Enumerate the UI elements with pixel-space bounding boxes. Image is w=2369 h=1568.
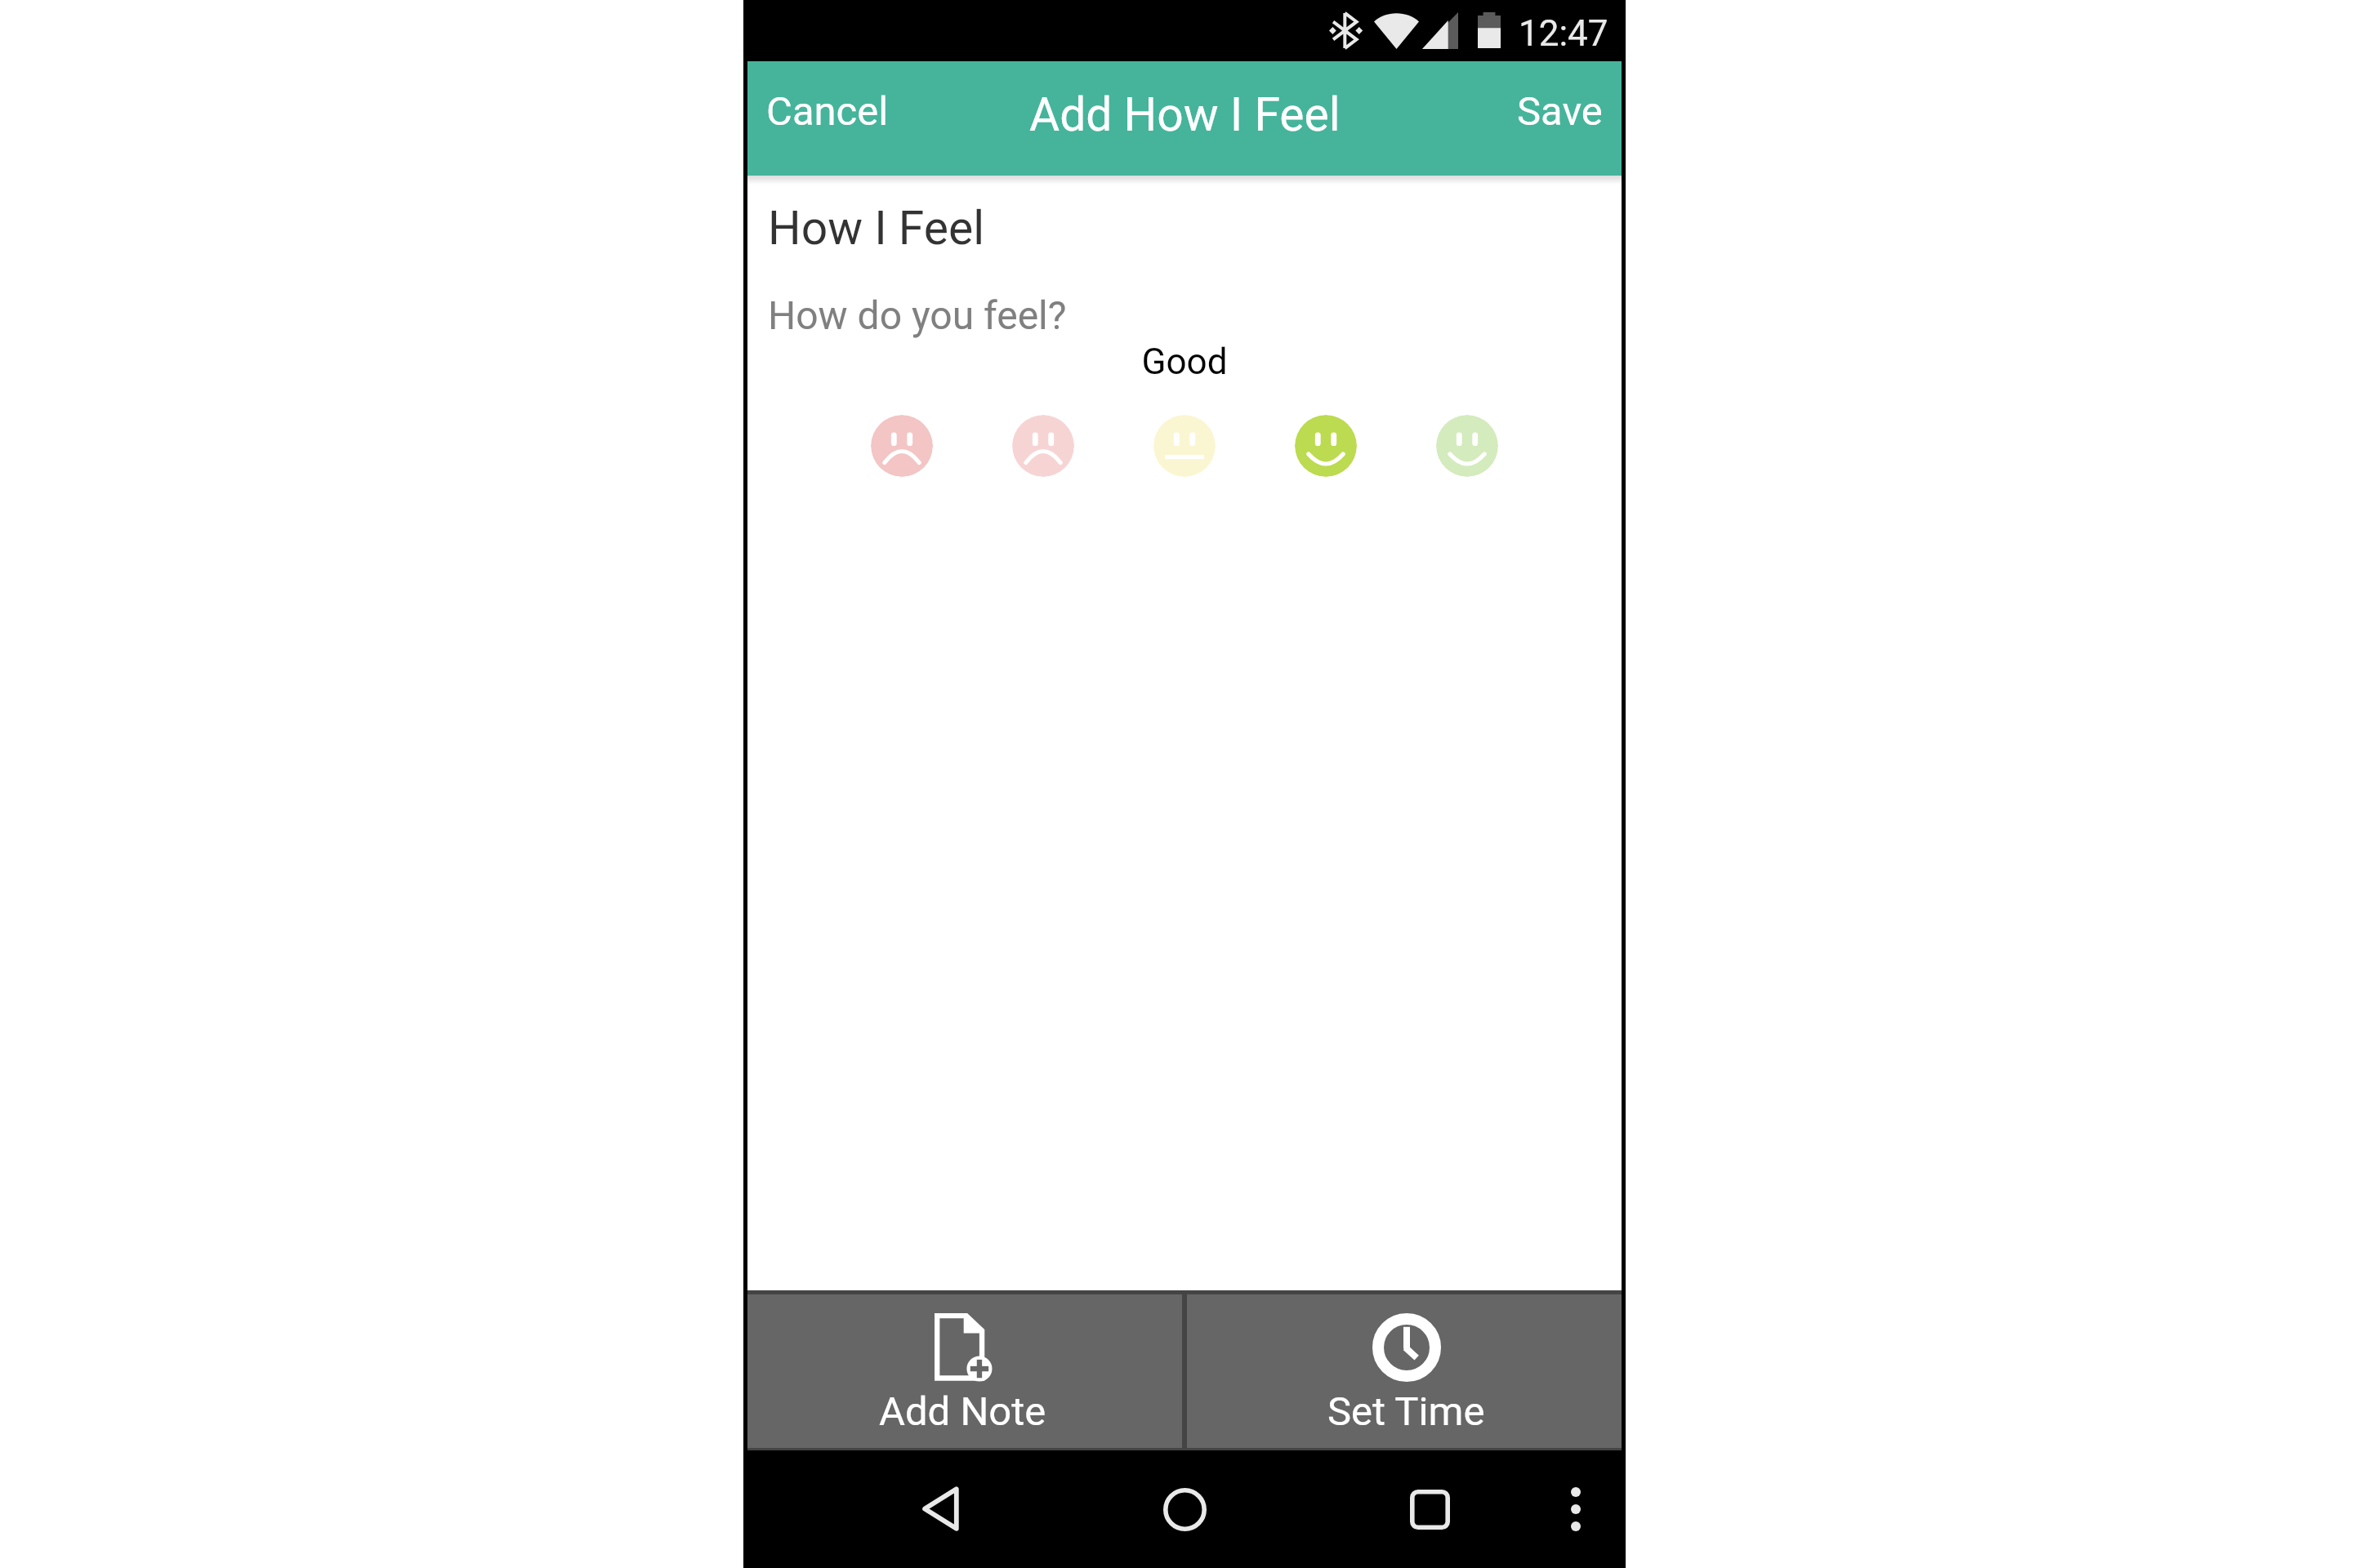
staticText: Cancel — [766, 88, 889, 135]
button[interactable]: Home — [1142, 1467, 1228, 1552]
button[interactable]: Terrible — [871, 415, 933, 477]
button[interactable]: Back — [897, 1466, 983, 1552]
staticText: Good — [743, 341, 1626, 383]
staticText: Add How I Feel — [1029, 87, 1341, 142]
staticText: Add Note — [879, 1388, 1046, 1435]
staticText: Set Time — [1327, 1388, 1485, 1435]
button[interactable]: More options — [1539, 1472, 1613, 1546]
button[interactable]: Great — [1436, 415, 1498, 477]
staticText: How I Feel — [768, 201, 985, 256]
button[interactable]: Good — [1295, 415, 1357, 477]
button[interactable]: Okay — [1153, 415, 1216, 477]
button[interactable]: Save — [1484, 67, 1626, 156]
staticText: 12:47 — [1519, 12, 1608, 55]
button[interactable]: Bad — [1012, 415, 1074, 477]
button[interactable]: Set Time — [1187, 1294, 1626, 1448]
staticText: How do you feel? — [768, 292, 1067, 338]
staticText: Save — [1517, 88, 1603, 135]
button[interactable]: Cancel — [743, 67, 921, 156]
button[interactable]: Add Note — [743, 1294, 1182, 1448]
button[interactable]: Recents — [1387, 1467, 1473, 1552]
